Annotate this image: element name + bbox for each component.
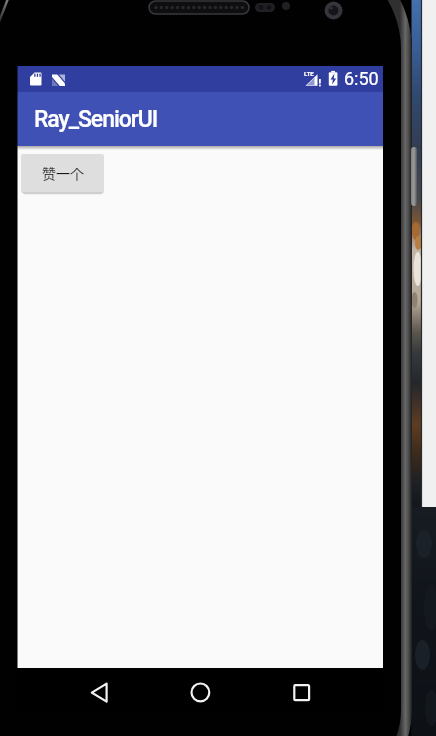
staticText: 6:50 [344, 68, 379, 89]
staticText: 赞一个 [42, 163, 84, 183]
staticText: LTE [304, 70, 314, 77]
staticText: Ray_SeniorUI [34, 106, 158, 133]
button[interactable]: 赞一个 [21, 154, 104, 192]
button[interactable] [277, 670, 327, 712]
button[interactable] [75, 670, 125, 712]
button[interactable] [175, 670, 225, 712]
